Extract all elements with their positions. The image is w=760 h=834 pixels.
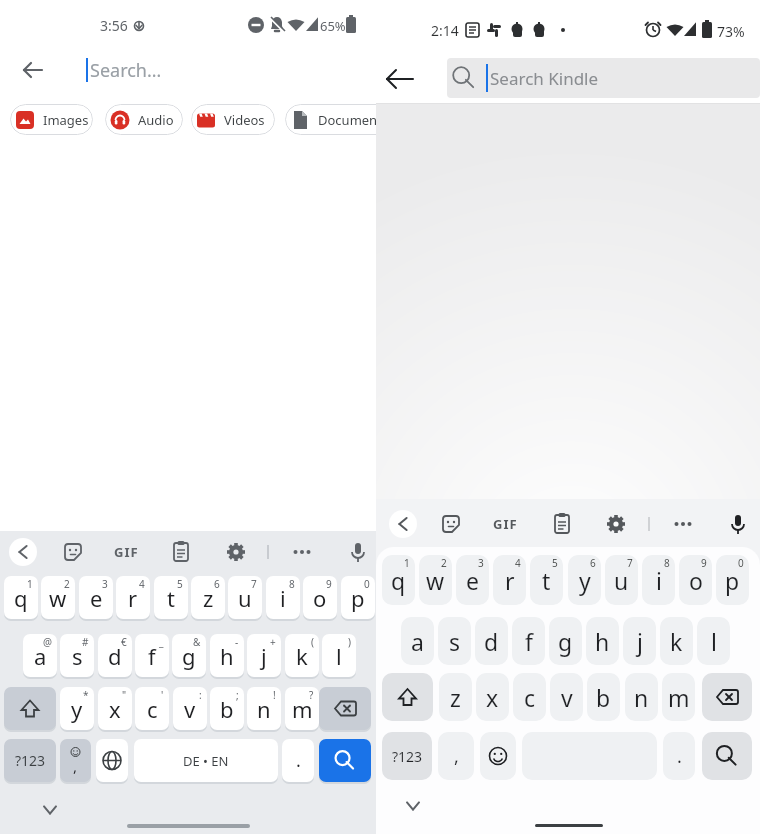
button[interactable]: b <box>587 673 620 721</box>
button[interactable]: v <box>173 687 207 730</box>
button[interactable]: u <box>605 555 638 605</box>
button[interactable]: s <box>60 634 94 677</box>
button[interactable]: b <box>210 687 244 730</box>
staticText: 3:56 <box>100 16 128 35</box>
button[interactable]: . <box>282 739 314 782</box>
button[interactable] <box>342 536 374 568</box>
button[interactable] <box>96 739 128 782</box>
button[interactable]: e <box>456 555 489 605</box>
button[interactable]: x <box>476 673 509 721</box>
button[interactable]: h <box>586 617 619 665</box>
button[interactable]: DE • EN <box>134 739 278 782</box>
button[interactable] <box>220 536 252 568</box>
button[interactable] <box>702 732 752 780</box>
button[interactable] <box>382 673 433 721</box>
button[interactable]: y <box>568 555 601 605</box>
button[interactable]: GIF <box>108 536 144 568</box>
button[interactable]: d <box>98 634 132 677</box>
button[interactable]: GIF <box>487 508 523 540</box>
button[interactable] <box>667 508 699 540</box>
button[interactable]: p <box>341 576 375 619</box>
button[interactable] <box>435 508 467 540</box>
button[interactable]: n <box>247 687 281 730</box>
button[interactable] <box>57 536 89 568</box>
button[interactable]: o <box>679 555 712 605</box>
button[interactable]: , <box>60 739 91 782</box>
button[interactable]: w <box>419 555 452 605</box>
button[interactable]: c <box>135 687 169 730</box>
button[interactable]: Search… <box>90 55 360 85</box>
button[interactable]: r <box>493 555 526 605</box>
button[interactable]: x <box>98 687 132 730</box>
button[interactable]: w <box>41 576 75 619</box>
button[interactable] <box>165 536 197 568</box>
button[interactable]: f <box>135 634 169 677</box>
button[interactable]: m <box>662 673 695 721</box>
button[interactable]: , <box>438 732 474 780</box>
button[interactable]: t <box>530 555 563 605</box>
button[interactable]: f <box>512 617 545 665</box>
staticText: r <box>505 565 515 596</box>
button[interactable] <box>600 508 632 540</box>
button[interactable] <box>18 55 48 85</box>
button[interactable]: m <box>285 687 319 730</box>
button[interactable]: n <box>625 673 658 721</box>
button[interactable]: Images <box>10 104 93 135</box>
button[interactable] <box>7 536 39 568</box>
button[interactable] <box>4 687 56 730</box>
button[interactable]: Videos <box>191 104 275 135</box>
staticText: 73% <box>717 22 745 41</box>
button[interactable]: g <box>172 634 206 677</box>
staticText: Videos <box>224 111 265 129</box>
button[interactable]: y <box>60 687 94 730</box>
button[interactable] <box>127 824 250 828</box>
button[interactable] <box>319 739 371 782</box>
button[interactable] <box>36 799 64 823</box>
button[interactable]: z <box>439 673 472 721</box>
button[interactable]: i <box>266 576 300 619</box>
button[interactable]: z <box>191 576 225 619</box>
button[interactable]: d <box>475 617 508 665</box>
button[interactable]: Documents <box>285 104 376 135</box>
button[interactable]: c <box>513 673 546 721</box>
button[interactable]: j <box>623 617 656 665</box>
button[interactable]: u <box>228 576 262 619</box>
button[interactable]: q <box>382 555 415 605</box>
button[interactable]: p <box>716 555 749 605</box>
button[interactable]: . <box>663 732 695 780</box>
button[interactable]: l <box>697 617 730 665</box>
button[interactable]: e <box>79 576 113 619</box>
button[interactable]: l <box>322 634 356 677</box>
button[interactable] <box>546 508 578 540</box>
button[interactable]: j <box>247 634 281 677</box>
button[interactable]: ?123 <box>4 739 56 782</box>
button[interactable] <box>387 508 419 540</box>
button[interactable]: q <box>4 576 38 619</box>
staticText: * <box>83 688 89 702</box>
button[interactable]: Audio <box>105 104 183 135</box>
button[interactable] <box>722 508 754 540</box>
button[interactable]: g <box>549 617 582 665</box>
button[interactable] <box>480 732 516 780</box>
button[interactable]: k <box>285 634 319 677</box>
button[interactable] <box>384 63 416 95</box>
button[interactable]: ?123 <box>382 732 432 780</box>
button[interactable] <box>535 824 603 827</box>
button[interactable] <box>319 687 371 730</box>
button[interactable]: a <box>23 634 57 677</box>
button[interactable] <box>399 797 427 819</box>
button[interactable]: r <box>116 576 150 619</box>
staticText: 5 <box>552 556 558 570</box>
button[interactable]: a <box>401 617 434 665</box>
button[interactable]: t <box>154 576 188 619</box>
button[interactable] <box>286 536 318 568</box>
button[interactable]: i <box>642 555 675 605</box>
button[interactable]: k <box>660 617 693 665</box>
button[interactable] <box>702 673 752 721</box>
button[interactable]: s <box>438 617 471 665</box>
button[interactable]: h <box>210 634 244 677</box>
button[interactable]: Search Kindle <box>447 58 760 98</box>
button[interactable]: v <box>550 673 583 721</box>
button[interactable]: o <box>303 576 337 619</box>
